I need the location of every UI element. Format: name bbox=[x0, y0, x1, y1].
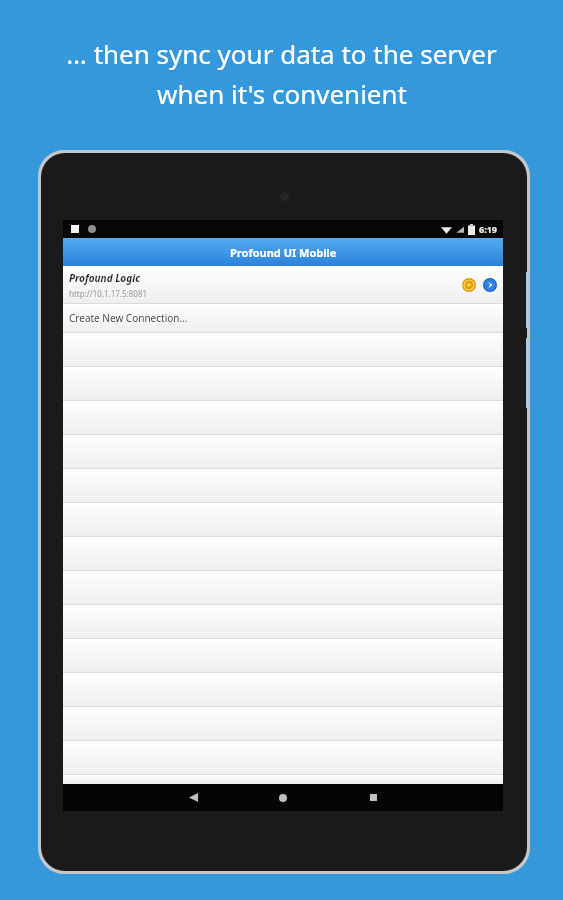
button[interactable] bbox=[63, 333, 503, 366]
staticText: Create New Connection... bbox=[69, 311, 188, 325]
button[interactable]: Home bbox=[238, 784, 328, 811]
button[interactable] bbox=[63, 639, 503, 672]
staticText: http://10.1.17.5:8081 bbox=[69, 288, 148, 299]
button[interactable] bbox=[63, 571, 503, 604]
button[interactable]: Sync bbox=[462, 278, 476, 292]
button[interactable] bbox=[63, 401, 503, 434]
button[interactable]: Recents bbox=[328, 784, 418, 811]
button[interactable] bbox=[63, 775, 503, 784]
staticText: … then sync your data to the server bbox=[66, 36, 497, 71]
button[interactable]: Profound Logic bbox=[63, 266, 503, 303]
button[interactable] bbox=[63, 469, 503, 502]
button[interactable] bbox=[63, 673, 503, 706]
staticText: when it's convenient bbox=[157, 76, 407, 111]
staticText: 6:19 bbox=[479, 223, 497, 235]
button[interactable] bbox=[63, 605, 503, 638]
button[interactable] bbox=[63, 537, 503, 570]
staticText: Profound Logic bbox=[69, 271, 140, 285]
button[interactable]: Back bbox=[148, 784, 238, 811]
button[interactable]: Open connection bbox=[483, 278, 497, 292]
button[interactable] bbox=[63, 435, 503, 468]
staticText: Profound UI Mobile bbox=[230, 245, 337, 260]
button[interactable] bbox=[63, 503, 503, 536]
button[interactable]: Profound UI Mobile bbox=[63, 238, 503, 266]
button[interactable] bbox=[63, 367, 503, 400]
button[interactable] bbox=[63, 707, 503, 740]
button[interactable]: Create New Connection... bbox=[63, 304, 503, 332]
button[interactable] bbox=[63, 741, 503, 774]
